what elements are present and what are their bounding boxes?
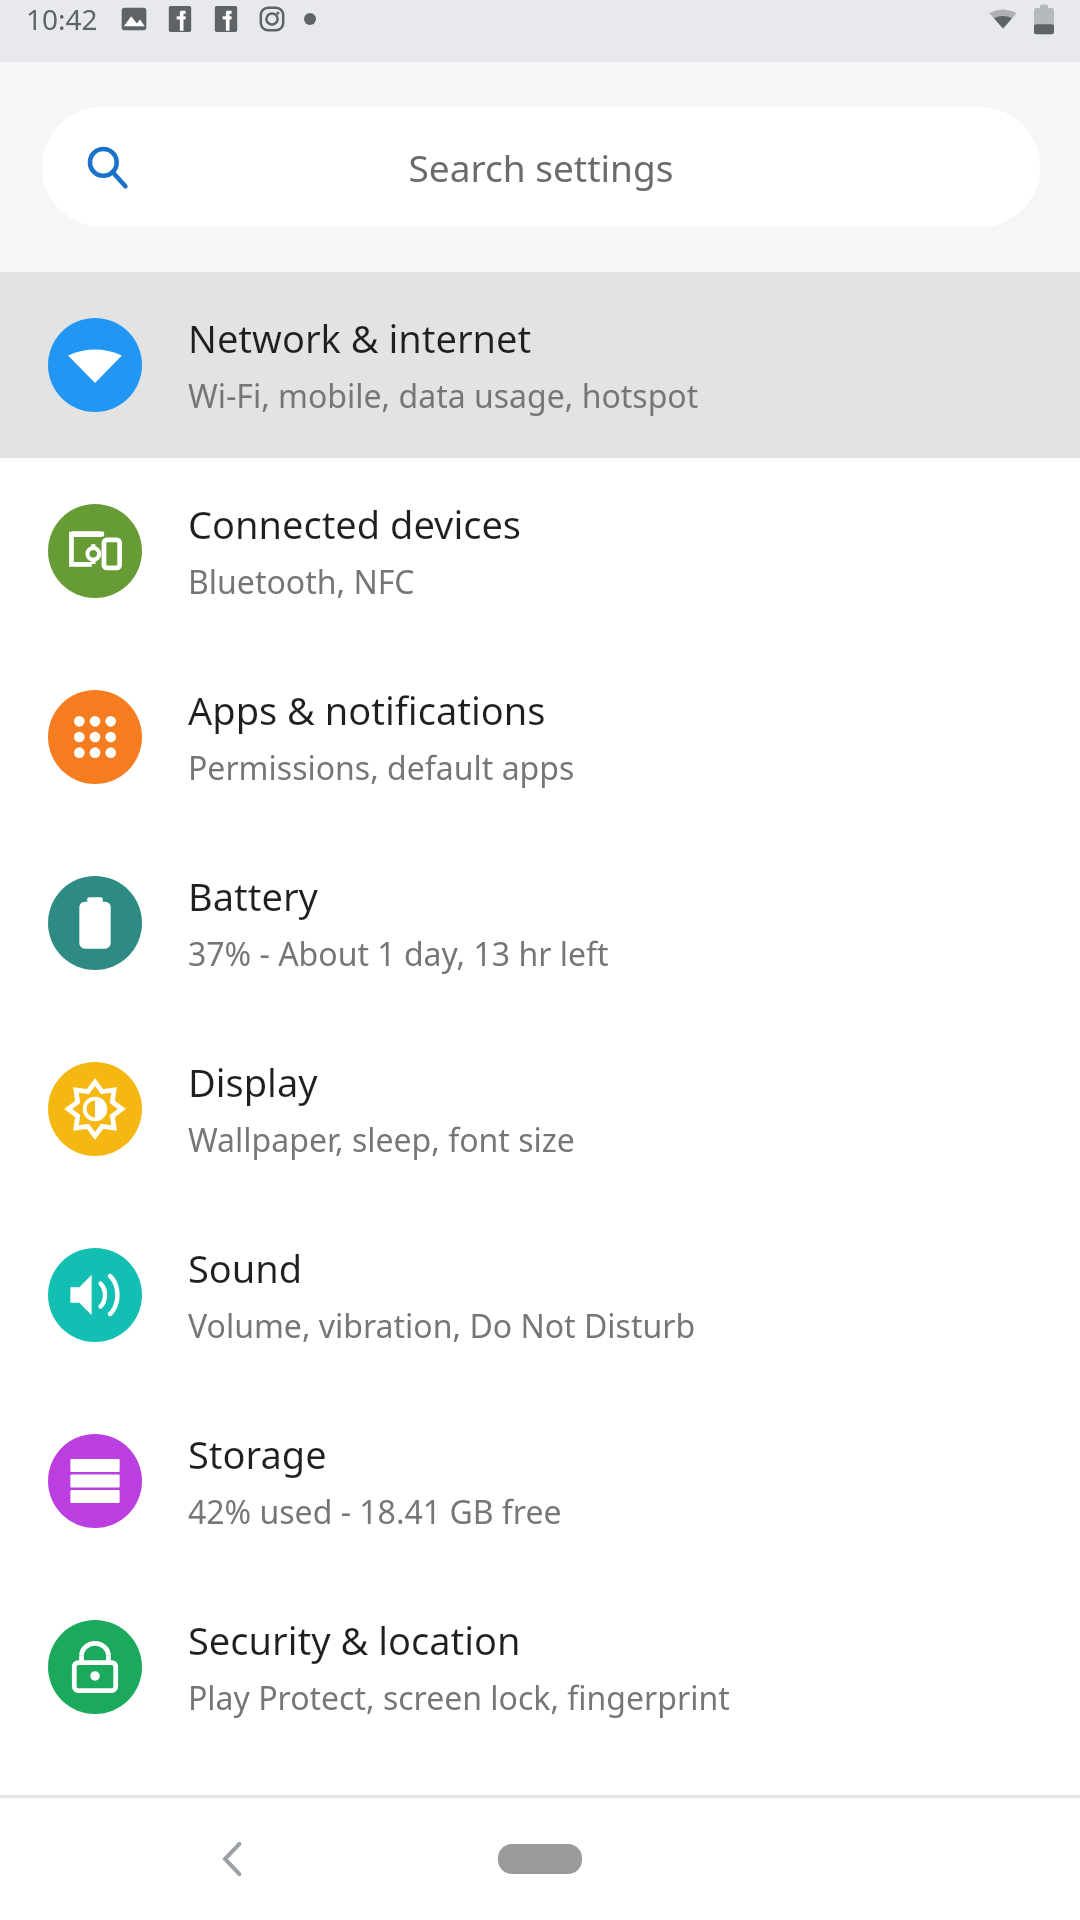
staticText: Storage [188,1428,327,1480]
button[interactable]: Home [455,1809,625,1909]
staticText: 42% used - 18.41 GB free [188,1490,562,1534]
button[interactable]: Network & internet [0,272,1080,458]
button[interactable]: Apps & notifications [0,644,1080,830]
staticText: Network & internet [188,312,532,364]
button[interactable]: Display [0,1016,1080,1202]
staticText: 37% - About 1 day, 13 hr left [188,932,609,976]
staticText: 10:42 [26,0,98,38]
button[interactable]: Storage [0,1388,1080,1574]
staticText: Connected devices [188,498,522,550]
staticText: Battery [188,870,318,922]
staticText: Display [188,1056,318,1108]
staticText: Bluetooth, NFC [188,560,415,604]
staticText: Search settings [130,142,952,192]
staticText: Wi-Fi, mobile, data usage, hotspot [188,374,699,418]
staticText: Volume, vibration, Do Not Disturb [188,1304,696,1348]
button[interactable]: Security & location [0,1574,1080,1760]
staticText: Wallpaper, sleep, font size [188,1118,575,1162]
button[interactable]: Sound [0,1202,1080,1388]
staticText: Security & location [188,1614,521,1666]
button[interactable]: Search settings [42,107,1040,227]
button[interactable]: Connected devices [0,458,1080,644]
button[interactable]: Battery [0,830,1080,1016]
staticText: Apps & notifications [188,684,546,736]
staticText: Play Protect, screen lock, fingerprint [188,1676,730,1720]
staticText: Sound [188,1242,303,1294]
button[interactable]: Back [180,1806,286,1912]
staticText: Permissions, default apps [188,746,575,790]
